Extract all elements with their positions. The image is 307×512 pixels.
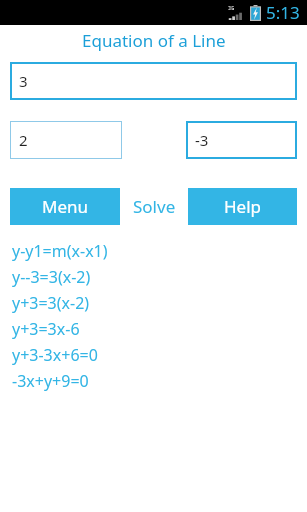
staticText: 2	[19, 130, 28, 150]
staticText: Solve	[133, 195, 176, 218]
staticText: y+3=3x-6	[12, 318, 80, 340]
button[interactable]: Help	[188, 188, 297, 225]
button[interactable]: Menu	[10, 188, 120, 225]
staticText: y--3=3(x-2)	[12, 266, 91, 288]
other: 3G signal	[228, 6, 243, 20]
staticText: 5:13	[266, 1, 300, 24]
staticText: y+3=3(x-2)	[12, 292, 90, 314]
staticText: -3	[195, 130, 209, 150]
staticText: Help	[224, 195, 262, 218]
button[interactable]: -3	[186, 121, 297, 159]
button[interactable]: 2	[10, 121, 122, 159]
button[interactable]: 3	[10, 62, 297, 100]
button[interactable]: Solve	[120, 188, 188, 225]
staticText: Equation of a Line	[82, 29, 226, 52]
staticText: y+3-3x+6=0	[12, 344, 98, 366]
other: Battery charging	[250, 5, 261, 21]
staticText: 3	[19, 71, 28, 91]
staticText: y-y1=m(x-x1)	[12, 240, 108, 262]
staticText: -3x+y+9=0	[12, 370, 89, 392]
staticText: Menu	[42, 195, 89, 218]
